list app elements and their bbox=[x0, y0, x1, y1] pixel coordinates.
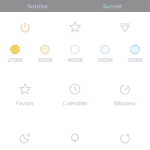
staticText: Sunset bbox=[103, 2, 122, 10]
staticText: Sunrise bbox=[27, 2, 47, 10]
button[interactable]: 6500K bbox=[120, 44, 150, 63]
staticText: Minuteur bbox=[114, 99, 136, 107]
button[interactable]: 5000K bbox=[90, 44, 120, 63]
button[interactable]: Power bbox=[0, 21, 50, 33]
staticText: Calendrier bbox=[62, 99, 87, 107]
button[interactable]: Dim bbox=[100, 21, 150, 33]
staticText: 3500K bbox=[37, 56, 52, 63]
button[interactable]: 4000K bbox=[60, 44, 90, 63]
button[interactable]: Favorite bbox=[50, 21, 100, 33]
button[interactable]: 3500K bbox=[30, 44, 60, 63]
staticText: 6500K bbox=[127, 56, 142, 63]
button[interactable]: Calendrier bbox=[50, 83, 100, 107]
staticText: 2700K bbox=[7, 56, 22, 63]
button[interactable]: 2700K bbox=[0, 44, 30, 63]
button[interactable]: Nuit bbox=[0, 132, 50, 150]
button[interactable]: Lecture bbox=[50, 132, 100, 150]
staticText: 5000K bbox=[97, 56, 112, 63]
button[interactable]: Minuteur bbox=[100, 83, 150, 107]
button[interactable]: Favoris bbox=[0, 83, 50, 107]
button[interactable]: Cycle bbox=[100, 132, 150, 150]
staticText: 4000K bbox=[67, 56, 82, 63]
staticText: Favoris bbox=[16, 99, 34, 107]
